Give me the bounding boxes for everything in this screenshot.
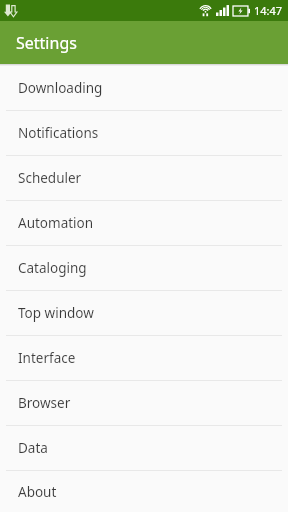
button[interactable]: Top window (0, 291, 288, 335)
staticText: Automation (18, 214, 94, 232)
staticText: Downloading (18, 79, 103, 97)
button[interactable]: Scheduler (0, 156, 288, 200)
button[interactable]: Downloading (0, 66, 288, 110)
staticText: About (18, 483, 57, 501)
staticText: Scheduler (18, 169, 82, 187)
staticText: Settings (16, 32, 77, 54)
staticText: Interface (18, 349, 76, 367)
staticText: Notifications (18, 124, 99, 142)
button[interactable]: Cataloging (0, 246, 288, 290)
staticText: Data (18, 439, 48, 457)
button[interactable]: Data (0, 426, 288, 470)
button[interactable]: Interface (0, 336, 288, 380)
staticText: Cataloging (18, 259, 87, 277)
button[interactable]: About (0, 471, 288, 512)
staticText: 14:47 (254, 3, 283, 18)
staticText: Browser (18, 394, 71, 412)
staticText: Top window (18, 304, 94, 322)
button[interactable]: Notifications (0, 111, 288, 155)
button[interactable]: Automation (0, 201, 288, 245)
button[interactable]: Browser (0, 381, 288, 425)
